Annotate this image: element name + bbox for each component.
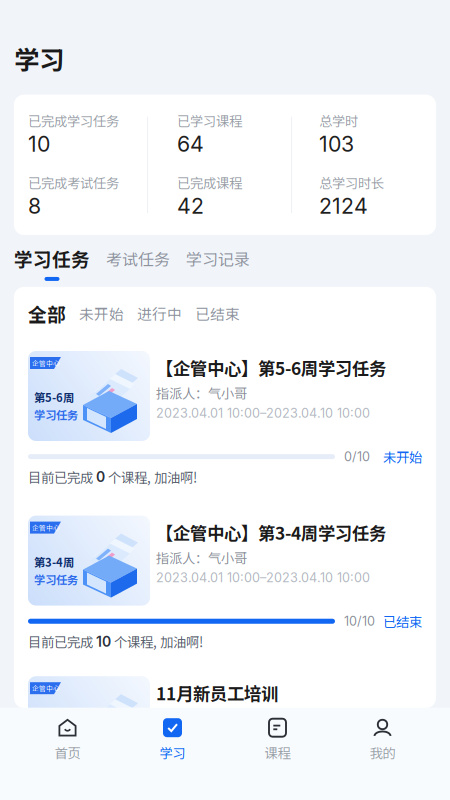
button[interactable]: 进行中 [137, 303, 182, 324]
staticText: 未开始 [79, 303, 124, 324]
staticText: 指派人：气小哥 [156, 548, 247, 567]
staticText: 我的 [369, 743, 395, 762]
staticText: 第5-6周 [34, 389, 74, 405]
staticText: 10/10 [344, 614, 375, 629]
staticText: 工培训 [34, 732, 67, 748]
staticText: 总学时 [319, 111, 358, 130]
staticText: 【企管中心】第3-4周学习任务 [156, 520, 386, 545]
staticText: 已学习课程 [177, 111, 242, 130]
staticText: 11月新员 [34, 714, 81, 731]
staticText: 103 [319, 131, 354, 157]
staticText: 学习任务 [34, 406, 78, 423]
button[interactable]: 学习记录 [186, 245, 250, 270]
button[interactable]: 课程 [225, 708, 330, 800]
staticText: 10 [96, 633, 111, 650]
button[interactable]: 企管中心 [14, 494, 436, 658]
button[interactable]: 学习任务 [14, 245, 90, 281]
staticText: 0 [96, 468, 105, 485]
button[interactable]: 企管中心 [14, 329, 436, 494]
button[interactable]: 首页 [15, 708, 120, 800]
staticText: 企管中心 [32, 523, 60, 532]
staticText: 2023.04.01 10:00–2023.04.10 10:00 [156, 405, 370, 421]
staticText: 已结束 [195, 303, 240, 324]
button[interactable]: 学习 [120, 708, 225, 800]
staticText: 未开始 [383, 447, 422, 466]
staticText: 目前已完成 [28, 467, 96, 487]
button[interactable]: 我的 [330, 708, 435, 800]
staticText: 0/10 [344, 449, 370, 464]
staticText: 【企管中心】第5-6周学习任务 [156, 355, 386, 380]
staticText: 学习记录 [186, 247, 250, 270]
staticText: 学习 [159, 743, 185, 762]
staticText: 企管中心 [32, 683, 60, 693]
button[interactable]: 已结束 [195, 303, 240, 324]
staticText: 学习任务 [34, 571, 78, 587]
button[interactable]: 考试任务 [106, 245, 170, 270]
staticText: 目前已完成 [28, 632, 96, 651]
staticText: 指派人：气小哥 [156, 383, 247, 402]
staticText: 已完成考试任务 [28, 173, 119, 192]
button[interactable]: 全部 [28, 300, 66, 327]
staticText: 学习任务 [14, 245, 90, 272]
staticText: 个课程, 加油啊! [111, 632, 203, 651]
staticText: 进行中 [137, 303, 182, 324]
staticText: 已完成学习任务 [28, 111, 119, 130]
staticText: 学习 [14, 40, 64, 77]
staticText: 首页 [54, 743, 80, 762]
staticText: 8 [28, 193, 41, 219]
staticText: 10 [28, 131, 50, 157]
staticText: 第3-4周 [34, 554, 74, 570]
staticText: 课程 [264, 743, 290, 762]
staticText: 2023.04.01 10:00–2023.04.10 10:00 [156, 570, 370, 585]
staticText: 11月新员工培训 [156, 680, 278, 705]
staticText: 64 [177, 131, 204, 157]
staticText: 已完成课程 [177, 173, 242, 192]
staticText: 42 [177, 193, 204, 219]
button[interactable]: 未开始 [79, 303, 124, 324]
staticText: 已结束 [383, 612, 422, 631]
staticText: 全部 [28, 300, 66, 327]
staticText: 2124 [319, 193, 368, 219]
staticText: 总学习时长 [319, 173, 384, 192]
staticText: 考试任务 [106, 247, 170, 270]
staticText: 企管中心 [32, 358, 60, 368]
staticText: 个课程, 加油啊! [105, 467, 197, 487]
